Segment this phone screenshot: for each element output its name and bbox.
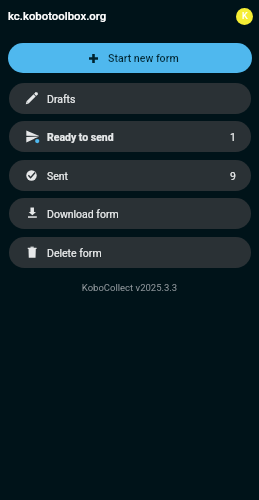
- staticText: KoboCollect v2025.3.3: [0, 282, 259, 293]
- button[interactable]: Ready to send: [9, 121, 251, 152]
- staticText: Delete form: [47, 247, 102, 259]
- staticText: Sent: [47, 170, 69, 182]
- button[interactable]: Account: [236, 8, 253, 25]
- staticText: Start new form: [108, 52, 179, 64]
- staticText: Drafts: [47, 93, 76, 105]
- button[interactable]: Sent: [9, 160, 251, 191]
- staticText: Ready to send: [47, 131, 114, 143]
- staticText: kc.kobotoolbox.org: [8, 9, 107, 22]
- staticText: 9: [230, 170, 236, 182]
- button[interactable]: Download form: [9, 198, 251, 229]
- staticText: 1: [230, 131, 236, 143]
- staticText: K: [242, 11, 248, 22]
- button[interactable]: Drafts: [9, 83, 251, 114]
- staticText: Download form: [47, 208, 119, 220]
- button[interactable]: Delete form: [9, 237, 251, 268]
- button[interactable]: Start new form: [8, 43, 252, 73]
